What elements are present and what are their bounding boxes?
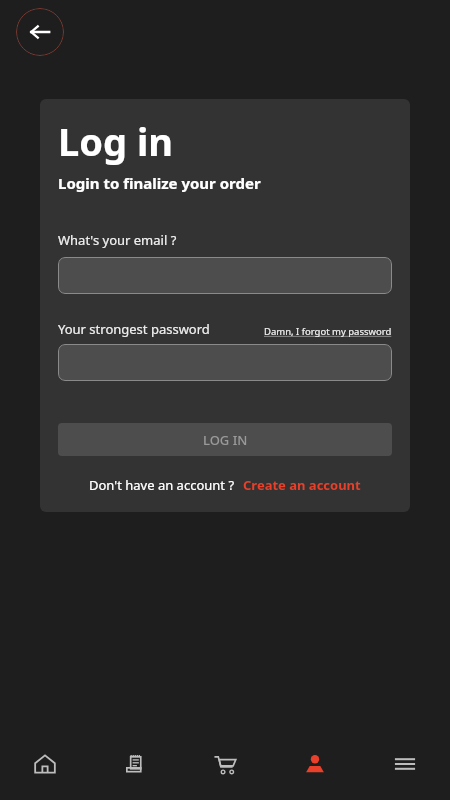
button[interactable]: Menu: [360, 728, 450, 800]
button[interactable]: Orders: [90, 728, 180, 800]
button[interactable]: LOG IN: [58, 423, 392, 456]
staticText: Create an account: [243, 476, 361, 494]
staticText: What's your email ?: [58, 231, 177, 249]
button[interactable]: [58, 344, 392, 381]
button[interactable]: Back: [16, 8, 64, 56]
staticText: Login to finalize your order: [58, 173, 261, 193]
staticText: Log in: [58, 115, 173, 167]
staticText: LOG IN: [203, 431, 248, 449]
button[interactable]: Cart: [180, 728, 270, 800]
button[interactable]: Damn, I forgot my password: [264, 325, 392, 338]
staticText: Your strongest password: [58, 320, 210, 338]
button[interactable]: Account: [270, 728, 360, 800]
staticText: Don't have an account ?: [89, 476, 235, 494]
button[interactable]: Home: [0, 728, 90, 800]
button[interactable]: [58, 257, 392, 294]
staticText: Damn, I forgot my password: [264, 325, 392, 338]
button[interactable]: Create an account: [243, 476, 361, 494]
